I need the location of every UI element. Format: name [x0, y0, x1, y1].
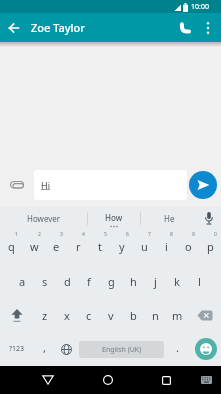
- staticText: 3: [60, 231, 63, 238]
- button[interactable]: 8: [155, 230, 177, 264]
- staticText: 7: [148, 231, 151, 238]
- button[interactable]: ,: [33, 332, 55, 366]
- button[interactable]: [55, 332, 77, 366]
- button[interactable]: However: [0, 207, 87, 230]
- button[interactable]: z: [33, 298, 56, 332]
- button[interactable]: He: [141, 207, 197, 230]
- button[interactable]: [197, 17, 219, 39]
- staticText: c: [86, 308, 92, 323]
- staticText: m: [172, 308, 183, 323]
- button[interactable]: 2: [23, 230, 45, 264]
- staticText: How: [105, 212, 123, 223]
- button[interactable]: [152, 366, 180, 394]
- button[interactable]: m: [166, 298, 188, 332]
- button[interactable]: c: [78, 298, 100, 332]
- staticText: f: [87, 274, 91, 289]
- staticText: s: [42, 274, 48, 289]
- button[interactable]: [94, 366, 122, 394]
- button[interactable]: 3: [45, 230, 67, 264]
- staticText: t: [98, 239, 102, 254]
- staticText: .: [176, 340, 179, 355]
- staticText: l: [198, 274, 201, 289]
- staticText: n: [152, 308, 159, 323]
- button[interactable]: 9: [177, 230, 199, 264]
- staticText: 1: [15, 231, 18, 238]
- staticText: e: [53, 239, 60, 254]
- button[interactable]: [189, 171, 217, 199]
- staticText: o: [185, 239, 192, 254]
- button[interactable]: 6: [111, 230, 133, 264]
- button[interactable]: [0, 14, 28, 42]
- staticText: 4: [82, 231, 85, 238]
- staticText: He: [164, 213, 175, 224]
- button[interactable]: x: [56, 298, 78, 332]
- button[interactable]: l: [188, 264, 210, 298]
- button[interactable]: [0, 170, 34, 200]
- staticText: k: [174, 274, 180, 289]
- button[interactable]: [0, 298, 33, 332]
- staticText: h: [130, 274, 137, 289]
- staticText: 8: [170, 231, 173, 238]
- staticText: w: [30, 239, 39, 254]
- button[interactable]: English (UK): [79, 332, 164, 366]
- staticText: y: [119, 239, 125, 254]
- button[interactable]: 1: [0, 230, 23, 264]
- button[interactable]: b: [122, 298, 144, 332]
- staticText: ?123: [9, 344, 25, 354]
- button[interactable]: ?123: [0, 332, 33, 366]
- button[interactable]: [34, 366, 62, 394]
- button[interactable]: Hi: [34, 170, 187, 200]
- staticText: x: [64, 308, 70, 323]
- button[interactable]: [188, 332, 221, 366]
- button[interactable]: 0: [199, 230, 221, 264]
- staticText: b: [130, 308, 137, 323]
- staticText: English (UK): [102, 345, 142, 355]
- button[interactable]: 5: [89, 230, 111, 264]
- staticText: 5: [104, 231, 107, 238]
- staticText: u: [141, 239, 148, 254]
- button[interactable]: [198, 372, 214, 388]
- button[interactable]: v: [100, 298, 122, 332]
- staticText: Hi: [41, 179, 50, 191]
- staticText: j: [154, 274, 157, 289]
- button[interactable]: 7: [133, 230, 155, 264]
- button[interactable]: d: [56, 264, 78, 298]
- staticText: 9: [192, 231, 195, 238]
- button[interactable]: a: [11, 264, 34, 298]
- staticText: z: [42, 308, 48, 323]
- staticText: v: [108, 308, 114, 323]
- staticText: 2: [38, 231, 41, 238]
- button[interactable]: [197, 207, 221, 230]
- staticText: q: [8, 239, 15, 254]
- staticText: p: [207, 239, 214, 254]
- staticText: i: [165, 239, 168, 254]
- button[interactable]: h: [122, 264, 144, 298]
- button[interactable]: .: [166, 332, 188, 366]
- button[interactable]: k: [166, 264, 188, 298]
- button[interactable]: [188, 298, 221, 332]
- staticText: ,: [43, 340, 46, 355]
- button[interactable]: j: [144, 264, 166, 298]
- button[interactable]: g: [100, 264, 122, 298]
- staticText: 6: [126, 231, 129, 238]
- button[interactable]: 4: [67, 230, 89, 264]
- staticText: g: [108, 274, 115, 289]
- staticText: 0: [214, 231, 217, 238]
- staticText: However: [27, 213, 61, 224]
- staticText: 10:00: [191, 2, 209, 12]
- button[interactable]: [171, 15, 197, 41]
- staticText: Zoe Taylor: [31, 20, 85, 35]
- staticText: r: [76, 239, 81, 254]
- button[interactable]: f: [78, 264, 100, 298]
- button[interactable]: n: [144, 298, 166, 332]
- staticText: a: [19, 274, 26, 289]
- staticText: d: [64, 274, 71, 289]
- button[interactable]: How: [88, 207, 140, 230]
- button[interactable]: s: [34, 264, 56, 298]
